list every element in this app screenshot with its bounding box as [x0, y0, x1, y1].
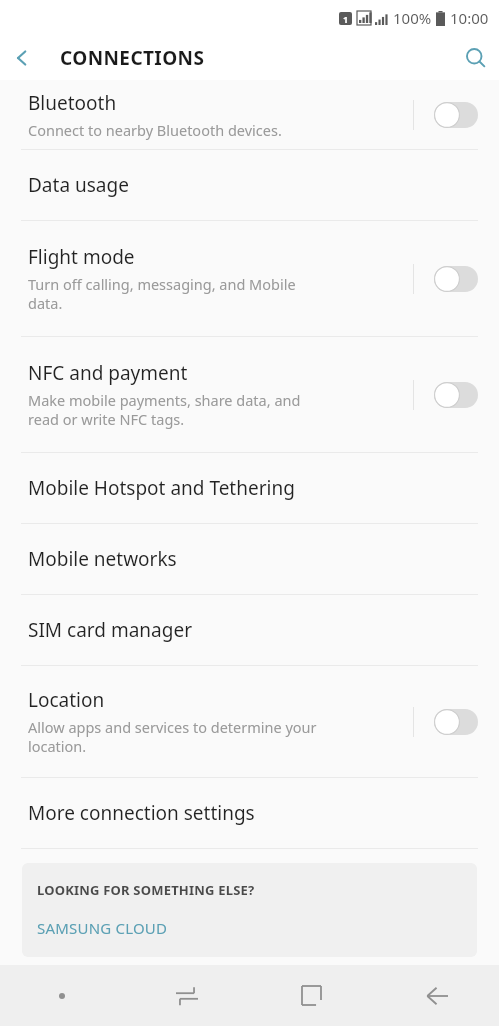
staticText: LOOKING FOR SOMETHING ELSE? — [37, 881, 255, 899]
button[interactable]: Search — [453, 36, 499, 80]
button[interactable]: Mobile Hotspot and Tethering — [0, 453, 499, 523]
button[interactable]: Data usage — [0, 150, 499, 220]
staticText: 100% — [393, 8, 432, 28]
staticText: CONNECTIONS — [60, 45, 205, 71]
staticText: Data usage — [28, 172, 129, 198]
button[interactable]: LOOKING FOR SOMETHING ELSE? — [22, 863, 477, 957]
button[interactable]: SAMSUNG CLOUD — [37, 918, 168, 938]
button[interactable]: Home — [249, 965, 374, 1026]
staticText: Make mobile payments, share data, and re… — [28, 390, 301, 429]
staticText: Connect to nearby Bluetooth devices. — [28, 120, 282, 140]
button[interactable]: Mobile networks — [0, 524, 499, 594]
button[interactable]: Back — [0, 36, 44, 80]
staticText: Turn off calling, messaging, and Mobile … — [28, 274, 296, 313]
button[interactable]: Notification dot — [0, 965, 124, 1026]
staticText: NFC and payment — [28, 360, 188, 386]
staticText: SIM card manager — [28, 617, 192, 643]
button[interactable]: Toggle Flight mode — [401, 221, 499, 336]
button[interactable]: NFC and payment — [0, 337, 499, 452]
button[interactable]: Recents — [124, 965, 249, 1026]
button[interactable]: Bluetooth — [0, 80, 499, 149]
button[interactable]: Back — [374, 965, 499, 1026]
staticText: Location — [28, 687, 105, 713]
staticText: Allow apps and services to determine you… — [28, 717, 317, 756]
staticText: Flight mode — [28, 244, 135, 270]
button[interactable]: More connection settings — [0, 778, 499, 848]
button[interactable]: Toggle NFC and payment — [401, 337, 499, 452]
button[interactable]: Toggle Bluetooth — [401, 80, 499, 149]
button[interactable]: Toggle Location — [401, 666, 499, 777]
staticText: More connection settings — [28, 800, 255, 826]
button[interactable]: SIM card manager — [0, 595, 499, 665]
staticText: 10:00 — [450, 8, 489, 28]
staticText: Mobile networks — [28, 546, 177, 572]
button[interactable]: Flight mode — [0, 221, 499, 336]
staticText: 1 — [343, 13, 349, 25]
staticText: Bluetooth — [28, 90, 117, 116]
staticText: Mobile Hotspot and Tethering — [28, 475, 295, 501]
button[interactable]: Location — [0, 666, 499, 777]
